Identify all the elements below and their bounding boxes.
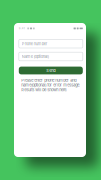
button[interactable]: Phone number	[19, 39, 83, 48]
button[interactable]: Name (optional)	[19, 52, 83, 61]
button[interactable]: Send	[19, 67, 83, 74]
staticText: 9:41	[19, 27, 25, 30]
staticText: Phone number	[22, 41, 48, 46]
staticText: Name (optional)	[22, 54, 49, 59]
staticText: Send	[46, 68, 55, 73]
staticText: Please enter phone number and name(optio…	[21, 78, 80, 92]
